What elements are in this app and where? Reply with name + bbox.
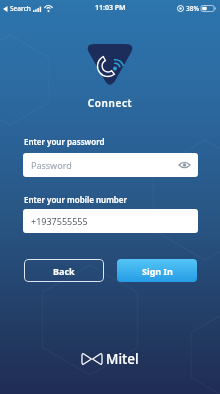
staticText: Connect [0,96,220,110]
button[interactable]: Back [24,259,104,282]
staticText: Search [10,4,31,13]
button[interactable]: Password [23,153,198,177]
staticText: +1937555555 [31,215,88,227]
staticText: Enter your mobile number [24,194,127,205]
staticText: Enter your password [24,136,105,147]
staticText: Back [53,265,75,277]
button[interactable]: Sign In [117,259,197,282]
staticText: Password [31,159,72,171]
staticText: 38% [186,4,199,13]
button[interactable]: +1937555555 [23,209,198,233]
staticText: 11:03 PM [95,3,126,13]
staticText: Mitel [106,350,139,368]
staticText: Sign In [142,265,173,277]
